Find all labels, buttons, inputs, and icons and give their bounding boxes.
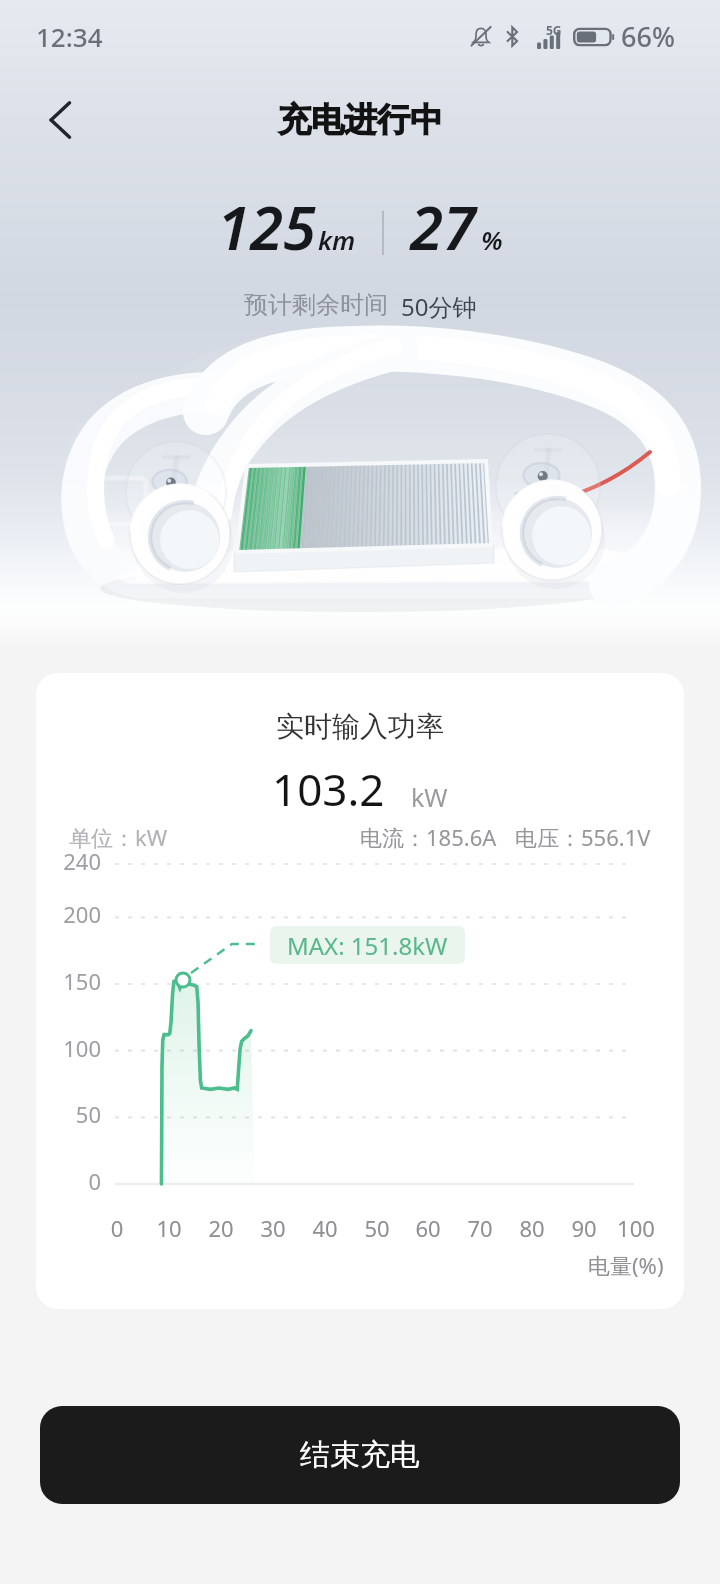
staticText: 90 bbox=[559, 1213, 609, 1243]
staticText: 80 bbox=[507, 1213, 557, 1243]
staticText: % bbox=[481, 222, 503, 257]
staticText: km bbox=[318, 222, 356, 257]
staticText: 实时输入功率 bbox=[36, 709, 684, 744]
staticText: 150 bbox=[36, 966, 101, 996]
staticText: 预计剩余时间 bbox=[244, 290, 388, 320]
staticText: 电流：185.6A bbox=[360, 822, 497, 852]
staticText: 0 bbox=[92, 1213, 142, 1243]
staticText: 30 bbox=[248, 1213, 298, 1243]
staticText: 40 bbox=[300, 1213, 350, 1243]
staticText: 103.2 bbox=[272, 759, 385, 819]
staticText: 50 bbox=[352, 1213, 402, 1243]
staticText: 50 bbox=[36, 1099, 101, 1129]
staticText: 240 bbox=[36, 846, 101, 876]
staticText: 100 bbox=[36, 1033, 101, 1063]
staticText: 200 bbox=[36, 899, 101, 929]
staticText: MAX: 151.8kW bbox=[287, 929, 448, 962]
staticText: 充电进行中 bbox=[278, 99, 443, 141]
staticText: 电量(%) bbox=[588, 1250, 664, 1280]
staticText: 60 bbox=[403, 1213, 453, 1243]
button[interactable]: 结束充电 bbox=[40, 1406, 680, 1504]
staticText: 12:34 bbox=[36, 19, 103, 54]
staticText: 125 bbox=[217, 186, 317, 268]
staticText: 单位：kW bbox=[69, 822, 168, 852]
staticText: 5G bbox=[546, 22, 562, 38]
button[interactable]: Back bbox=[26, 87, 92, 153]
staticText: 50分钟 bbox=[401, 290, 477, 323]
staticText: 10 bbox=[144, 1213, 194, 1243]
staticText: 0 bbox=[36, 1166, 101, 1196]
staticText: 20 bbox=[196, 1213, 246, 1243]
staticText: 电压：556.1V bbox=[515, 822, 651, 852]
staticText: 结束充电 bbox=[300, 1436, 420, 1474]
staticText: 27 bbox=[410, 186, 477, 268]
staticText: 66% bbox=[621, 18, 675, 55]
staticText: 70 bbox=[455, 1213, 505, 1243]
staticText: kW bbox=[411, 780, 448, 814]
staticText: 100 bbox=[611, 1213, 661, 1243]
